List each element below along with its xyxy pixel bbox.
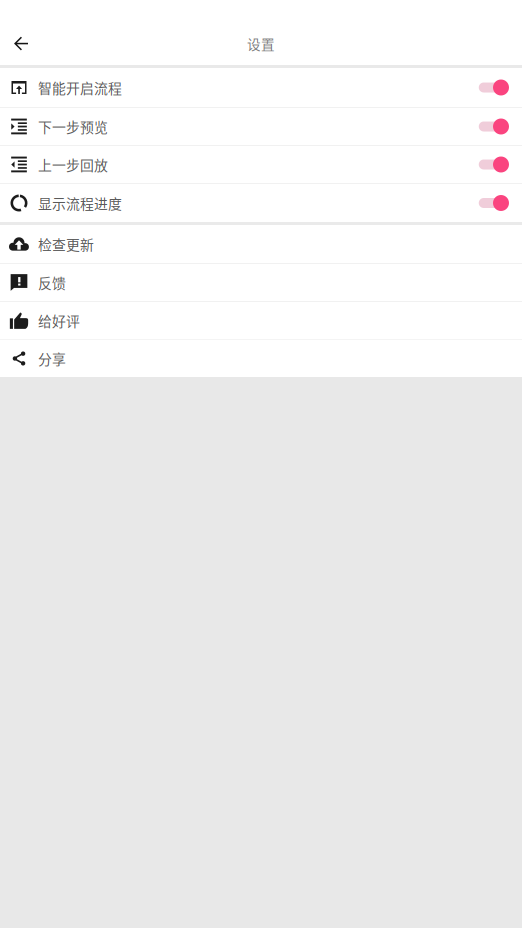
- staticText: 反馈: [38, 272, 66, 293]
- staticText: 上一步回放: [38, 154, 108, 175]
- button[interactable]: 检查更新: [0, 225, 522, 263]
- staticText: 设置: [247, 34, 275, 53]
- button[interactable]: 下一步预览: [0, 108, 522, 145]
- button[interactable]: 智能开启流程: [0, 68, 522, 107]
- button[interactable]: 给好评: [0, 302, 522, 339]
- button[interactable]: 反馈: [0, 264, 522, 301]
- button[interactable]: 显示流程进度: [0, 184, 522, 222]
- staticText: 显示流程进度: [38, 193, 122, 213]
- staticText: 下一步预览: [38, 116, 108, 137]
- staticText: 智能开启流程: [38, 77, 122, 98]
- button[interactable]: 分享: [0, 340, 522, 377]
- staticText: 给好评: [38, 310, 80, 331]
- staticText: 分享: [38, 348, 66, 369]
- staticText: 检查更新: [38, 234, 94, 254]
- button[interactable]: Back: [0, 22, 42, 65]
- button[interactable]: 上一步回放: [0, 146, 522, 183]
